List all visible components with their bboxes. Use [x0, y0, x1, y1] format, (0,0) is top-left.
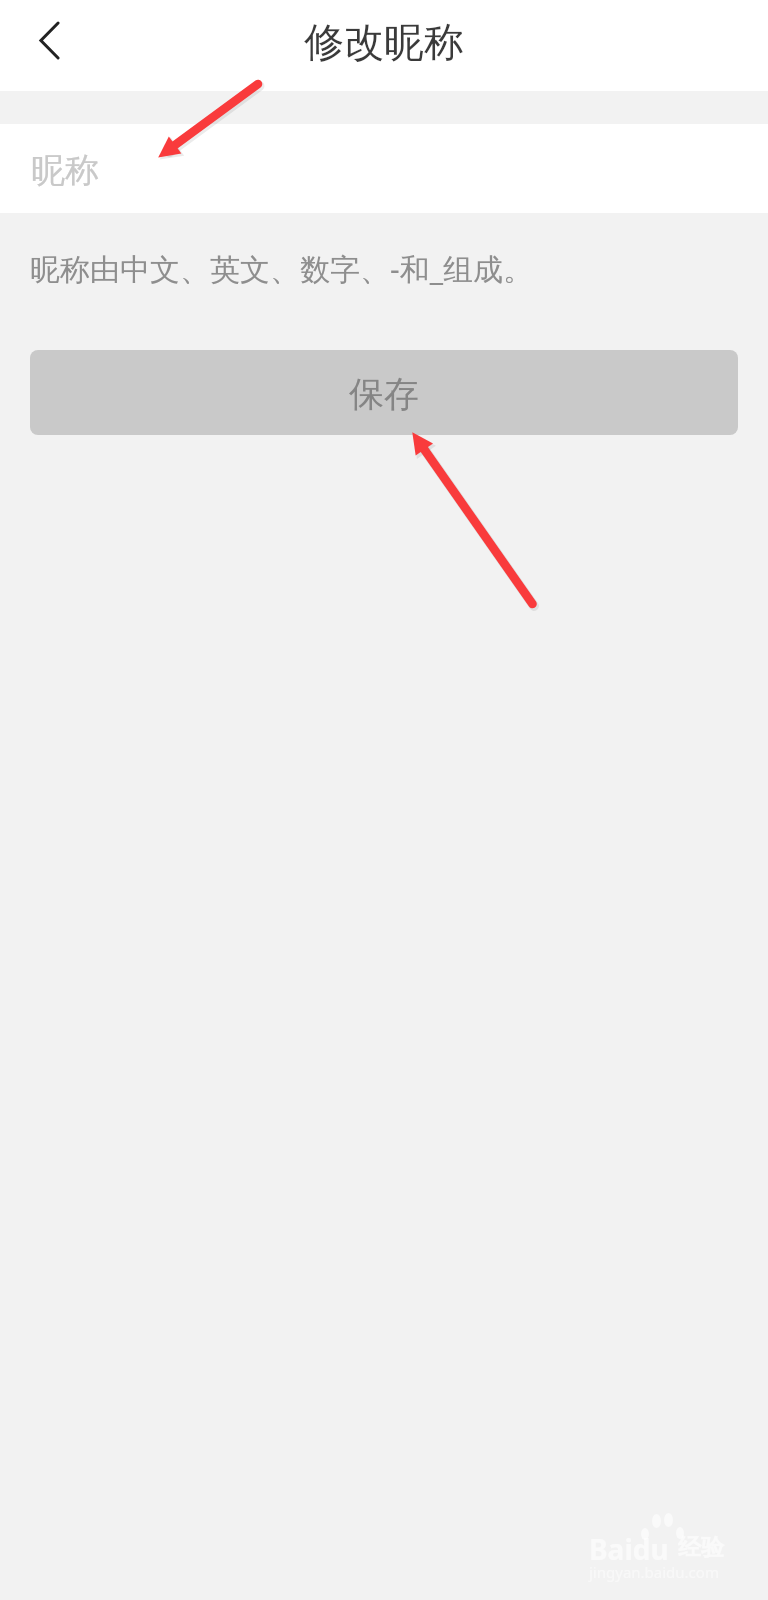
staticText: 修改昵称 [304, 17, 464, 67]
button[interactable]: Back [13, 5, 83, 75]
button[interactable]: 保存 [30, 350, 738, 435]
staticText: Baidu [589, 1530, 669, 1568]
staticText: 保存 [349, 372, 419, 416]
staticText: 昵称 [31, 149, 99, 192]
button[interactable]: 昵称 [0, 124, 768, 213]
staticText: 昵称由中文、英文、数字、-和_组成。 [30, 248, 533, 289]
staticText: 经验 [678, 1533, 724, 1562]
